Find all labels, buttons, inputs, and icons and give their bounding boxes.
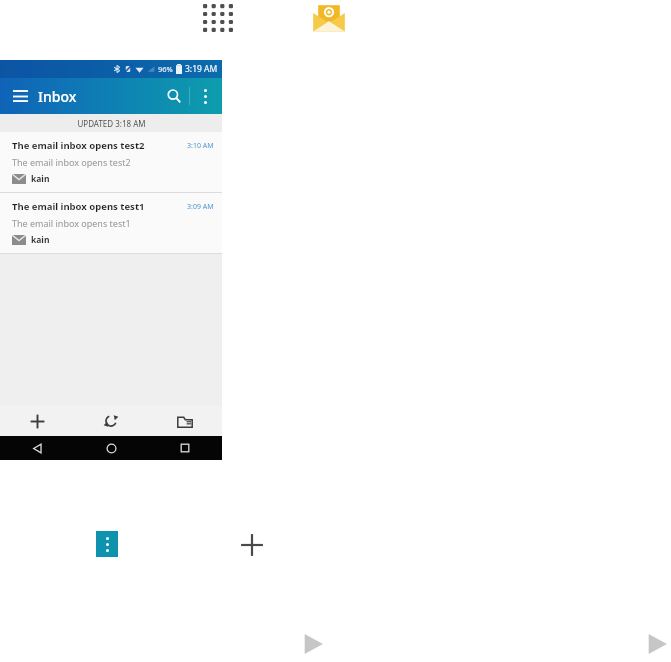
- button[interactable]: Home: [74, 436, 148, 460]
- staticText: Inbox: [38, 87, 77, 106]
- button[interactable]: More options: [190, 81, 220, 111]
- button[interactable]: Back: [0, 436, 74, 460]
- button[interactable]: Add: [239, 532, 265, 558]
- button[interactable]: Navigation menu: [8, 84, 32, 108]
- staticText: 3:19 AM: [185, 63, 218, 75]
- button[interactable]: The email inbox opens test2: [0, 132, 222, 192]
- button[interactable]: Refresh: [74, 406, 148, 436]
- staticText: The email inbox opens test2: [12, 139, 187, 152]
- button[interactable]: Email: [311, 2, 347, 34]
- staticText: 3:09 AM: [187, 202, 214, 212]
- button[interactable]: Apps: [203, 4, 233, 32]
- staticText: UPDATED 3:18 AM: [77, 118, 146, 129]
- button[interactable]: Folders: [148, 406, 222, 436]
- button[interactable]: Recent apps: [148, 436, 222, 460]
- staticText: The email inbox opens test2: [12, 156, 131, 168]
- button[interactable]: The email inbox opens test1: [0, 193, 222, 253]
- staticText: 3:10 AM: [187, 141, 214, 151]
- staticText: 96%: [158, 64, 173, 74]
- button[interactable]: Play: [300, 631, 326, 657]
- staticText: The email inbox opens test1: [12, 200, 187, 213]
- staticText: kain: [31, 173, 50, 185]
- button[interactable]: Compose: [0, 406, 74, 436]
- staticText: kain: [31, 234, 50, 246]
- button[interactable]: More options: [96, 531, 118, 557]
- button[interactable]: Search: [159, 81, 189, 111]
- staticText: The email inbox opens test1: [12, 217, 131, 229]
- button[interactable]: Play: [644, 631, 670, 657]
